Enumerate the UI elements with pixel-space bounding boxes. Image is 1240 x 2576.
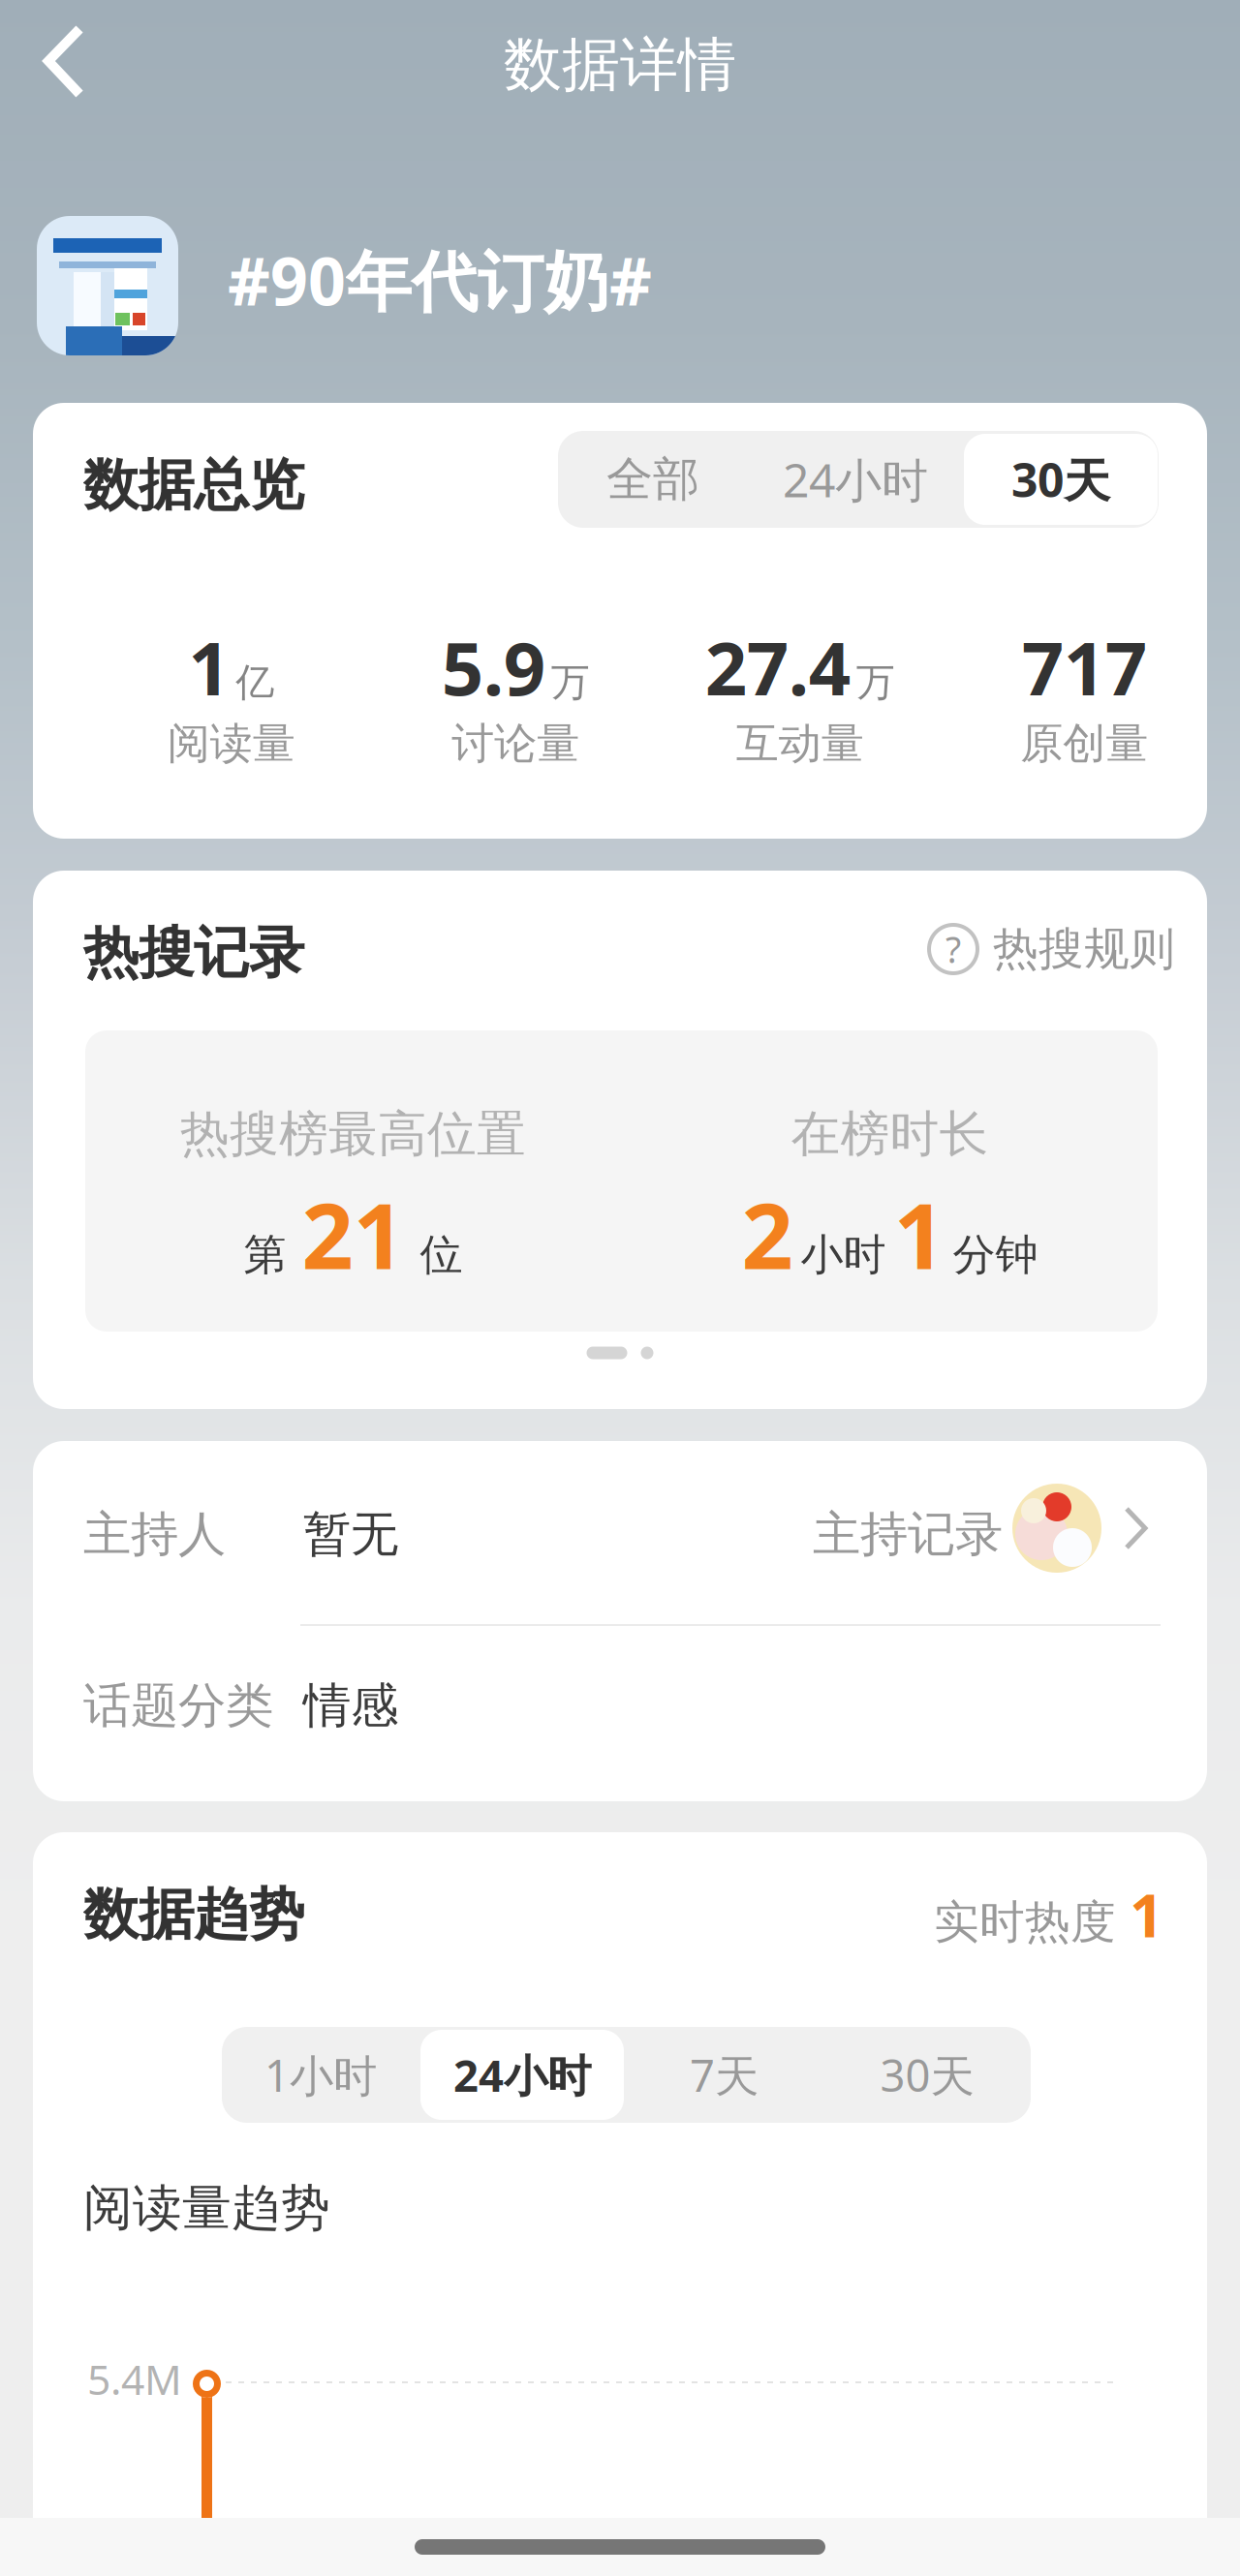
staticText: 1 bbox=[894, 1174, 945, 1294]
staticText: 主持记录 bbox=[813, 1505, 1003, 1564]
staticText: 原创量 bbox=[1020, 718, 1148, 770]
button[interactable]: 全部 bbox=[558, 431, 748, 528]
staticText: 数据总览 bbox=[83, 451, 304, 519]
button[interactable]: 主持人 bbox=[33, 1441, 1207, 1621]
staticText: ? bbox=[945, 925, 961, 973]
button[interactable]: 30天 bbox=[823, 2027, 1031, 2123]
staticText: #90年代订奶# bbox=[228, 236, 652, 324]
staticText: 24小时 bbox=[783, 448, 928, 510]
button[interactable]: 24小时 bbox=[748, 431, 963, 528]
staticText: 数据趋势 bbox=[83, 1881, 304, 1949]
staticText: 30天 bbox=[880, 2046, 974, 2104]
button[interactable]: 1小时 bbox=[222, 2027, 419, 2123]
button[interactable]: 7天 bbox=[625, 2027, 823, 2123]
button[interactable]: ? bbox=[917, 913, 1187, 985]
staticText: 话题分类 bbox=[83, 1676, 273, 1735]
staticText: 热搜榜最高位置 bbox=[180, 1104, 526, 1164]
staticText: 主持人 bbox=[83, 1505, 226, 1564]
staticText: 互动量 bbox=[736, 718, 864, 770]
staticText: 实时热度 bbox=[934, 1895, 1116, 1950]
staticText: 1 bbox=[188, 618, 230, 716]
staticText: 全部 bbox=[606, 451, 699, 508]
staticText: 位 bbox=[420, 1229, 463, 1281]
staticText: 万 bbox=[551, 659, 590, 706]
staticText: 1小时 bbox=[264, 2046, 377, 2104]
staticText: 讨论量 bbox=[452, 718, 580, 770]
button[interactable]: 30天 bbox=[963, 431, 1159, 528]
staticText: 2 bbox=[742, 1174, 793, 1294]
staticText: 暂无 bbox=[303, 1505, 398, 1564]
staticText: 5.4M bbox=[87, 2351, 182, 2406]
staticText: 27.4 bbox=[705, 618, 850, 716]
staticText: 热搜规则 bbox=[993, 921, 1175, 977]
staticText: 717 bbox=[1022, 618, 1147, 716]
staticText: 24小时 bbox=[453, 2046, 591, 2104]
staticText: 万 bbox=[856, 659, 895, 706]
staticText: 30天 bbox=[1011, 448, 1110, 510]
button[interactable]: 话题配图 bbox=[37, 216, 178, 355]
staticText: 7天 bbox=[690, 2046, 759, 2104]
staticText: 5.9 bbox=[442, 618, 545, 716]
staticText: 亿 bbox=[236, 659, 274, 706]
staticText: 小时 bbox=[801, 1229, 886, 1281]
staticText: 情感 bbox=[303, 1676, 398, 1735]
staticText: 阅读量 bbox=[167, 718, 295, 770]
staticText: 阅读量趋势 bbox=[83, 2178, 330, 2238]
button[interactable]: 24小时 bbox=[419, 2027, 625, 2123]
staticText: 数据详情 bbox=[504, 29, 736, 101]
button[interactable]: 返回 bbox=[2, 4, 124, 126]
staticText: 在榜时长 bbox=[791, 1104, 989, 1164]
staticText: 1 bbox=[1130, 1875, 1163, 1954]
staticText: 热搜记录 bbox=[83, 919, 304, 987]
staticText: 分钟 bbox=[953, 1229, 1038, 1281]
staticText: 第 bbox=[244, 1229, 286, 1281]
staticText: 21 bbox=[302, 1174, 404, 1294]
